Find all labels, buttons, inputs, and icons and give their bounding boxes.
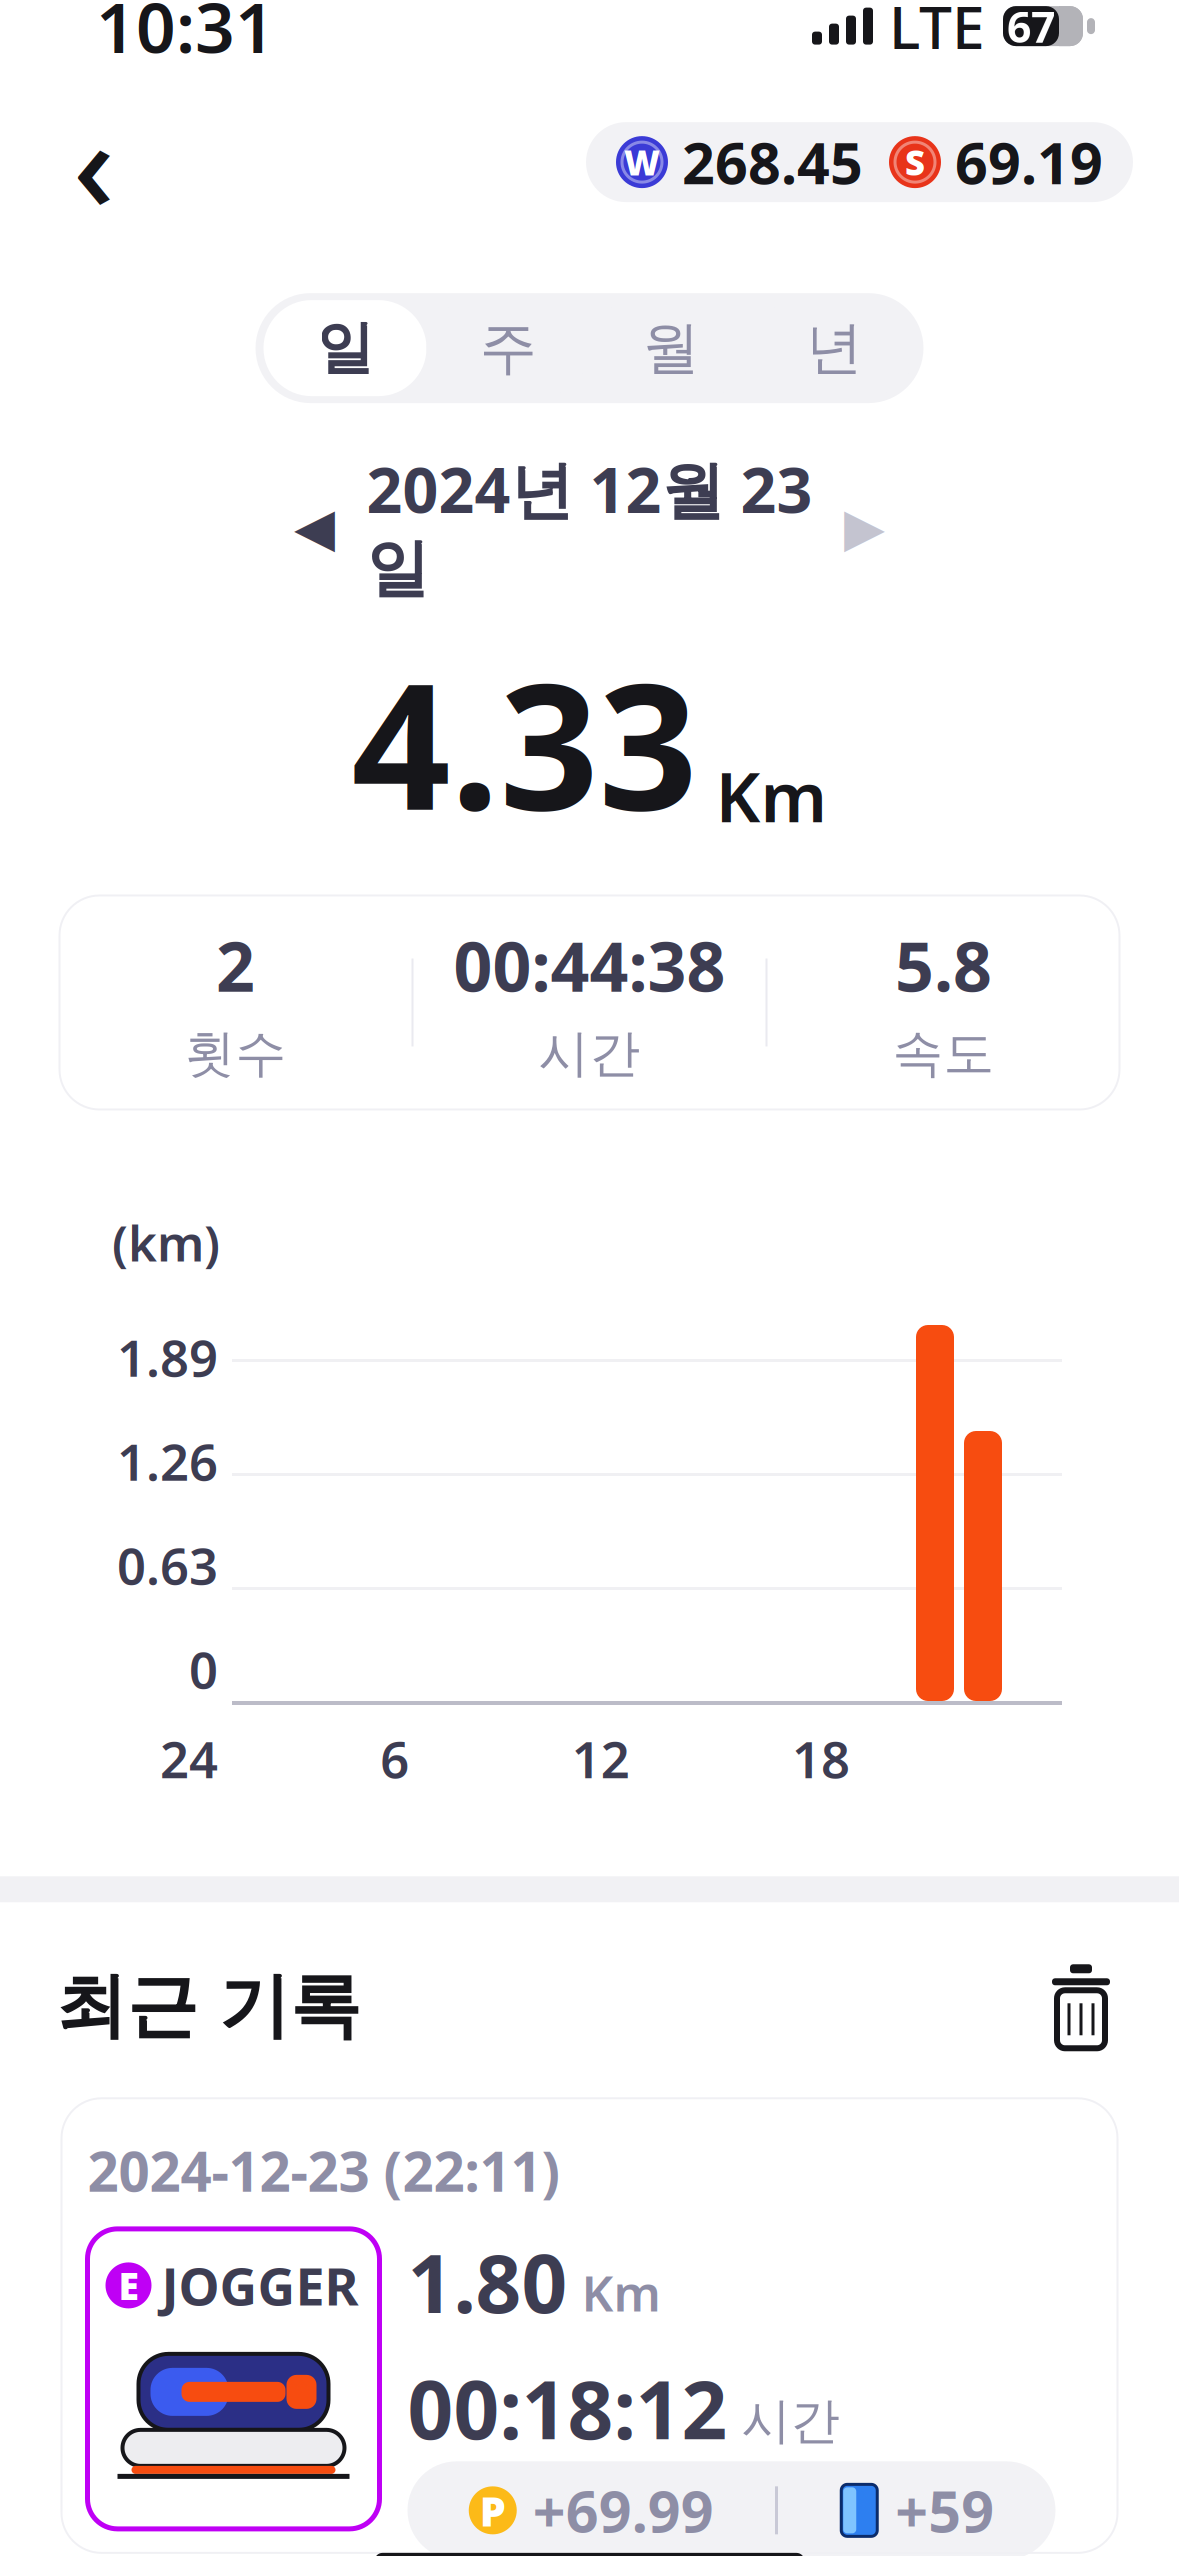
button[interactable]: 주 <box>426 300 589 396</box>
staticText: 횟수 <box>184 1022 286 1085</box>
button[interactable]: Delete records <box>1035 1960 1127 2052</box>
staticText: JOGGER <box>161 2251 358 2320</box>
staticText: 24 <box>160 1725 218 1792</box>
staticText: 1.89 <box>117 1323 218 1391</box>
staticText: 0.63 <box>117 1531 218 1599</box>
staticText: +59 <box>895 2472 994 2548</box>
staticText: S <box>905 139 925 185</box>
staticText: W <box>624 139 660 185</box>
button[interactable]: 2024-12-23 (22:11) <box>61 2098 1117 2553</box>
staticText: 주 <box>479 313 536 383</box>
staticText: ◀ <box>294 497 335 557</box>
staticText: 2 <box>216 920 255 1010</box>
staticText: 1.80 <box>407 2229 567 2335</box>
staticText: 2024-12-23 (22:11) <box>87 2134 560 2207</box>
staticText: 18 <box>792 1725 850 1792</box>
button[interactable]: Token balance 268.45 and 69.19 <box>586 122 1133 202</box>
staticText: ‹ <box>73 77 115 247</box>
staticText: 0 <box>189 1635 218 1703</box>
staticText: 2024년 12월 23일 <box>366 447 812 607</box>
staticText: 월 <box>642 313 699 383</box>
staticText: 최근 기록 <box>56 1963 361 2050</box>
staticText: Km <box>581 2260 660 2325</box>
staticText: P <box>480 2483 506 2538</box>
button[interactable]: 일 <box>263 300 426 396</box>
staticText: 12 <box>572 1725 630 1792</box>
staticText: 00:44:38 <box>453 920 725 1010</box>
staticText: Km <box>715 749 827 841</box>
staticText: E <box>118 2261 138 2310</box>
staticText: 시간 <box>741 2391 839 2451</box>
button[interactable]: Previous day <box>269 487 359 567</box>
staticText: 일 <box>316 313 373 383</box>
staticText: 5.8 <box>895 920 992 1010</box>
staticText: 00:18:12 <box>407 2355 727 2461</box>
staticText: 268.45 <box>682 124 863 200</box>
button[interactable]: 월 <box>589 300 752 396</box>
staticText: +69.99 <box>533 2472 714 2548</box>
staticText: LTE <box>889 0 985 65</box>
staticText: 69.19 <box>955 124 1103 200</box>
staticText: 년 <box>805 313 862 383</box>
staticText: 10:31 <box>96 0 275 72</box>
staticText: 6 <box>380 1725 409 1792</box>
staticText: ▶ <box>844 497 885 557</box>
staticText: 속도 <box>892 1022 994 1085</box>
button[interactable]: Back <box>42 110 146 214</box>
staticText: 시간 <box>538 1022 640 1085</box>
button[interactable]: Next day <box>819 487 909 567</box>
staticText: 4.33 <box>351 627 697 857</box>
staticText: (km) <box>112 1209 220 1275</box>
button[interactable]: 년 <box>752 300 915 396</box>
staticText: 1.26 <box>117 1427 218 1495</box>
staticText: 67 <box>1007 0 1055 54</box>
